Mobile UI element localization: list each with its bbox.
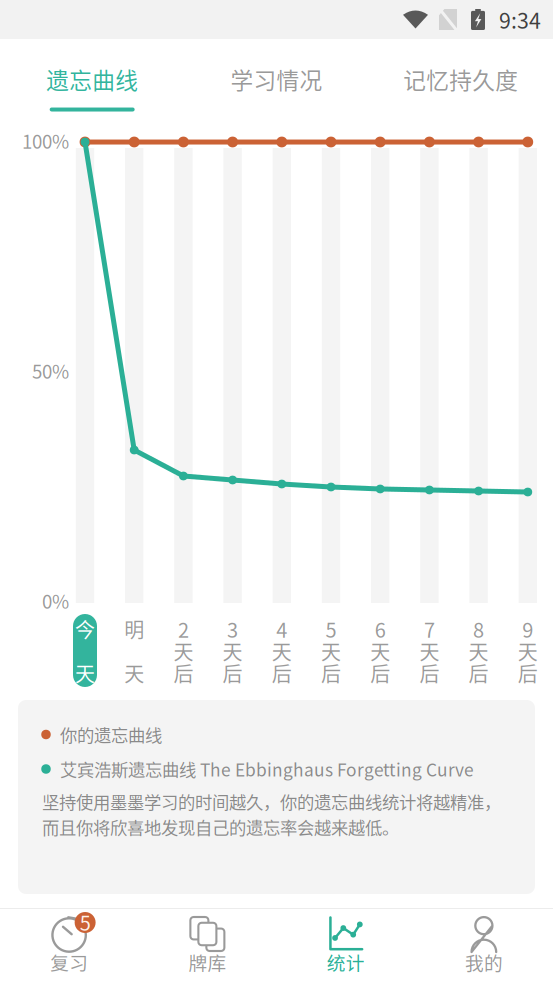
staticText: 天 [469, 636, 489, 665]
button[interactable]: 遗忘曲线 [0, 39, 184, 115]
staticText: 复习 [50, 948, 88, 975]
staticText: 2 [178, 614, 189, 643]
staticText: 天 [223, 636, 243, 665]
staticText: 6 [375, 614, 386, 643]
staticText: 9 [522, 614, 533, 643]
button[interactable]: 我的 [415, 908, 553, 983]
staticText: 天 [419, 636, 439, 665]
staticText: 后 [370, 658, 390, 687]
button[interactable]: 记忆持久度 [369, 39, 553, 115]
staticText: 后 [518, 658, 538, 687]
staticText: 牌库 [188, 948, 226, 975]
button[interactable]: 牌库 [138, 908, 276, 983]
staticText: 记忆持久度 [403, 63, 518, 95]
staticText: 后 [469, 658, 489, 687]
staticText: 后 [173, 658, 193, 687]
staticText: 明 [124, 614, 144, 643]
staticText: 7 [424, 614, 435, 643]
staticText: 统计 [327, 948, 365, 975]
staticText: 我的 [465, 948, 503, 975]
staticText: 坚持使用墨墨学习的时间越久，你的遗忘曲线统计将越精准， [42, 789, 501, 814]
staticText: 后 [272, 658, 292, 687]
staticText: 艾宾浩斯遗忘曲线 The Ebbinghaus Forgetting Curve [60, 756, 474, 782]
staticText: 遗忘曲线 [46, 63, 138, 95]
button[interactable]: 统计 [276, 908, 415, 983]
staticText: 5 [80, 907, 91, 936]
staticText: 后 [321, 658, 341, 687]
staticText: 天 [272, 636, 292, 665]
staticText: 后 [223, 658, 243, 687]
staticText: 8 [473, 614, 484, 643]
staticText: 今 [75, 614, 95, 643]
staticText: 天 [124, 658, 144, 687]
staticText: 后 [419, 658, 439, 687]
button[interactable]: 5 [0, 908, 138, 983]
staticText: 天 [321, 636, 341, 665]
staticText: 学习情况 [230, 63, 322, 95]
staticText: 天 [370, 636, 390, 665]
staticText: 3 [227, 614, 238, 643]
staticText: 0% [42, 587, 69, 614]
staticText: 5 [325, 614, 336, 643]
staticText: 100% [22, 127, 69, 154]
button[interactable]: 学习情况 [184, 39, 369, 115]
staticText: 而且你将欣喜地发现自己的遗忘率会越来越低。 [42, 814, 399, 840]
staticText: 天 [173, 636, 193, 665]
staticText: 你的遗忘曲线 [60, 722, 162, 747]
staticText: 天 [75, 658, 95, 687]
staticText: 9:34 [499, 4, 541, 35]
staticText: 50% [32, 357, 69, 384]
staticText: 天 [518, 636, 538, 665]
staticText: 4 [276, 614, 287, 643]
